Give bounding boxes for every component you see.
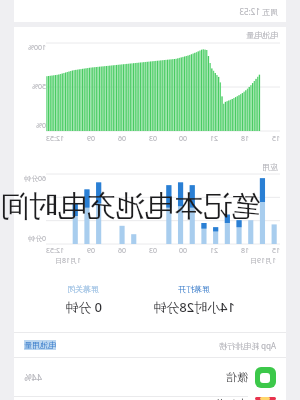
staticText: 03 [148,134,157,144]
button[interactable]: App 耗电排行榜 [14,333,286,357]
staticText: 电池用量 [24,340,56,350]
staticText: 00 [178,134,187,144]
staticText: App 耗电排行榜 [218,340,276,351]
staticText: 1月18日 [54,256,81,266]
staticText: 18 [240,246,249,256]
staticText: 15 [271,134,280,144]
staticText: 屏幕关闭 [67,284,99,294]
staticText: 0% [36,121,46,131]
staticText: 应用 [262,162,278,172]
other: WeChat app [255,367,276,388]
staticText: 03 [148,246,157,256]
staticText: 12:53 [46,246,64,256]
staticText: 09 [86,246,95,256]
staticText: 屏幕打开 [178,284,210,294]
staticText: 14小时28分钟 [153,298,235,316]
staticText: 21 [209,134,218,144]
staticText: 100% [28,43,46,53]
staticText: 21 [209,246,218,256]
staticText: 60分钟 [23,174,46,184]
staticText: 06 [117,246,126,256]
staticText: 1月19日 [249,256,276,266]
staticText: 0分钟 [27,234,46,244]
staticText: 09 [86,134,95,144]
staticText: 周五 12:53 [239,6,278,17]
staticText: 50% [32,82,46,92]
staticText: 0 分钟 [65,298,102,316]
staticText: 笔记本电池充电时间 [0,188,261,225]
button[interactable]: WeChat app [14,358,286,396]
other: Xiaohongshu app [255,397,276,400]
staticText: 小红书 [215,397,248,400]
staticText: 06 [117,134,126,144]
staticText: 电池电量 [246,30,278,40]
staticText: 15 [271,246,280,256]
staticText: 微信 [226,370,248,384]
staticText: 12:53 [46,134,64,144]
staticText: 18 [240,134,249,144]
staticText: 44% [24,371,42,383]
button[interactable]: Xiaohongshu app [14,397,286,400]
staticText: 00 [178,246,187,256]
